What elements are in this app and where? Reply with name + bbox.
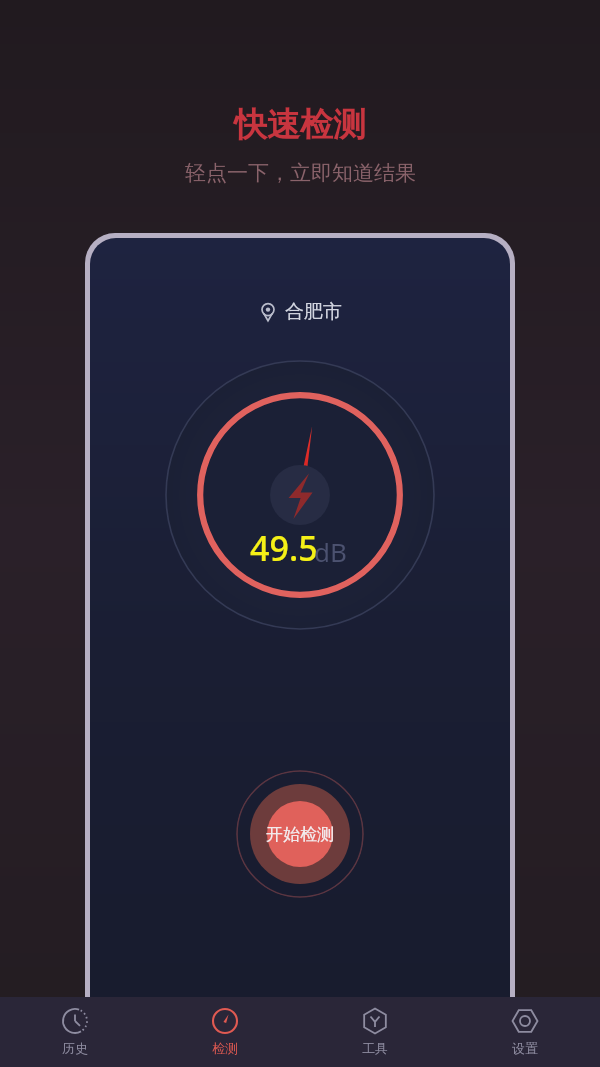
staticText: 快速检测 bbox=[234, 104, 366, 146]
staticText: 工具 bbox=[362, 1040, 388, 1056]
button[interactable]: 开始检测 bbox=[236, 770, 364, 898]
staticText: dB bbox=[314, 534, 347, 569]
button[interactable]: 历史 bbox=[0, 997, 150, 1067]
button[interactable]: 检测 bbox=[150, 997, 300, 1067]
staticText: 历史 bbox=[62, 1040, 88, 1056]
button[interactable]: 合肥市 bbox=[250, 296, 350, 328]
staticText: 轻点一下，立即知道结果 bbox=[185, 160, 416, 186]
button[interactable]: 设置 bbox=[450, 997, 600, 1067]
staticText: 合肥市 bbox=[285, 300, 342, 324]
staticText: 49.5 bbox=[250, 525, 318, 571]
button[interactable]: 工具 bbox=[300, 997, 450, 1067]
staticText: 开始检测 bbox=[266, 824, 334, 845]
staticText: 设置 bbox=[512, 1040, 538, 1056]
staticText: 检测 bbox=[212, 1040, 238, 1056]
